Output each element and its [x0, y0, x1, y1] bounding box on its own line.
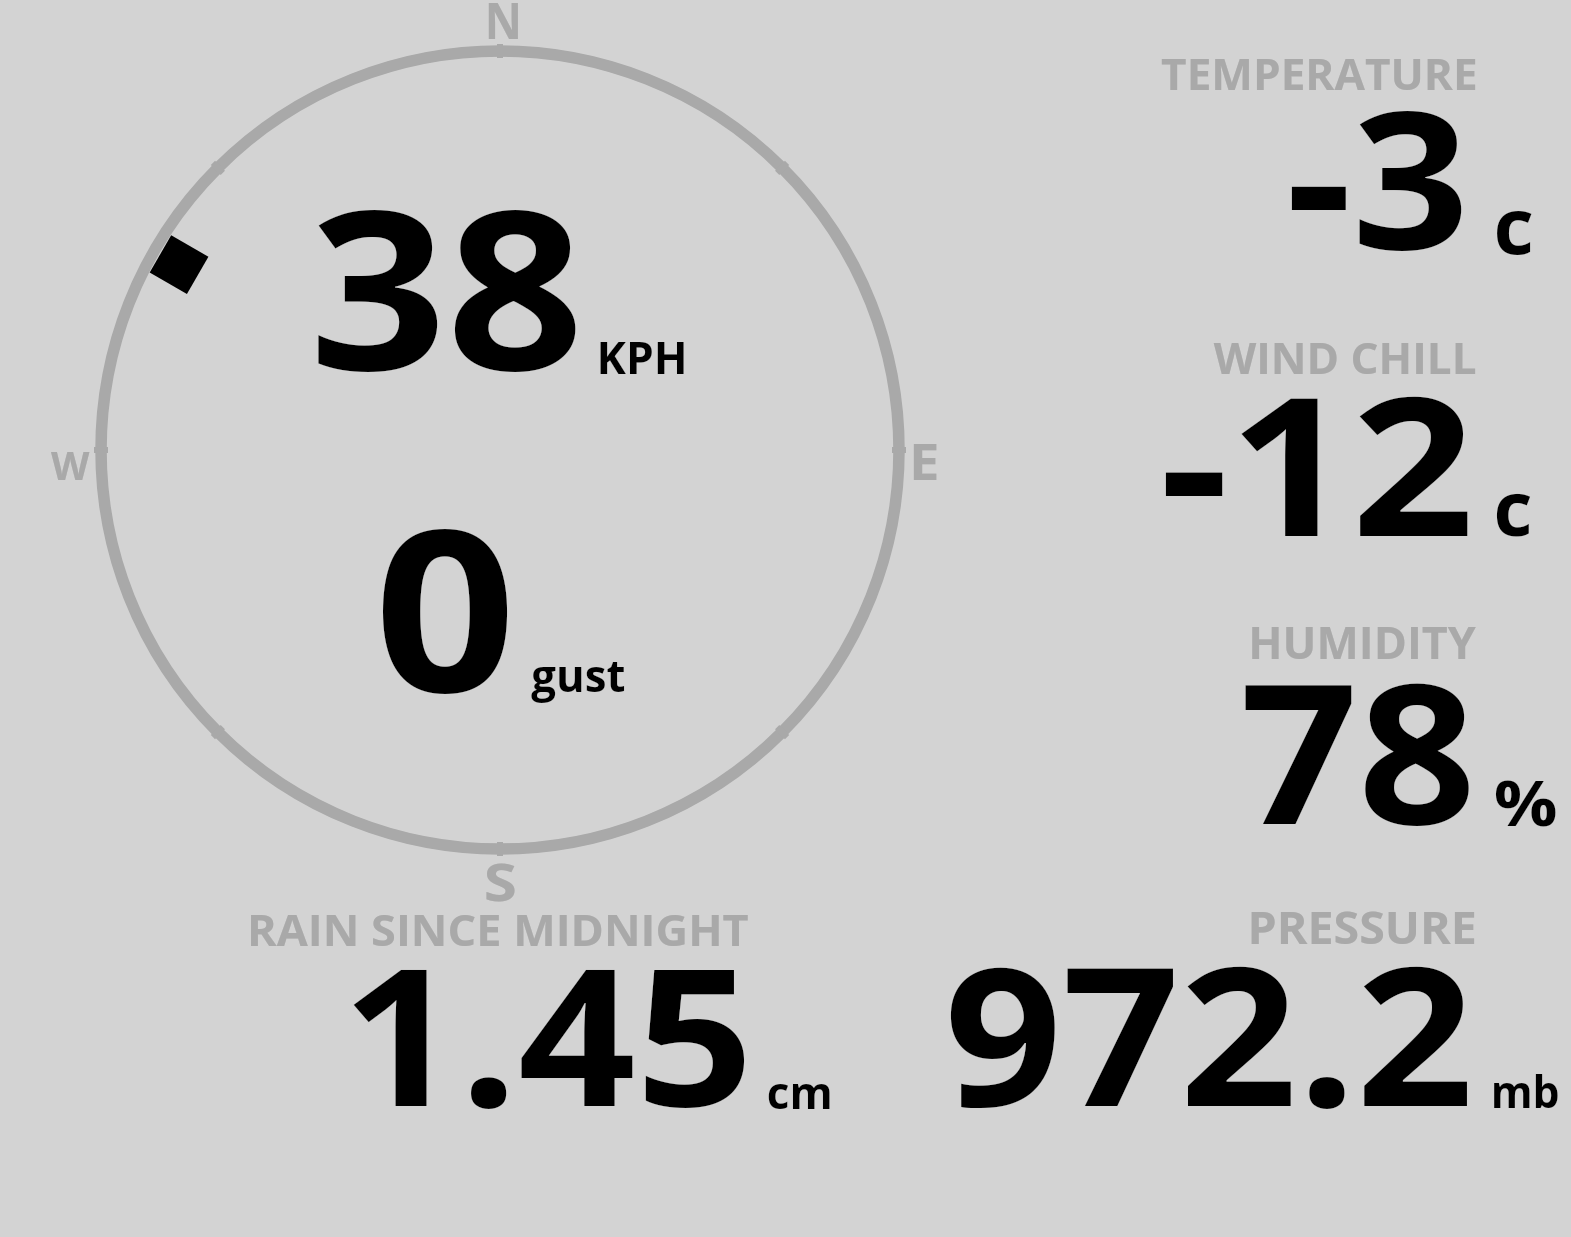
button[interactable]: Weather station dashboard — [0, 0, 1571, 1237]
